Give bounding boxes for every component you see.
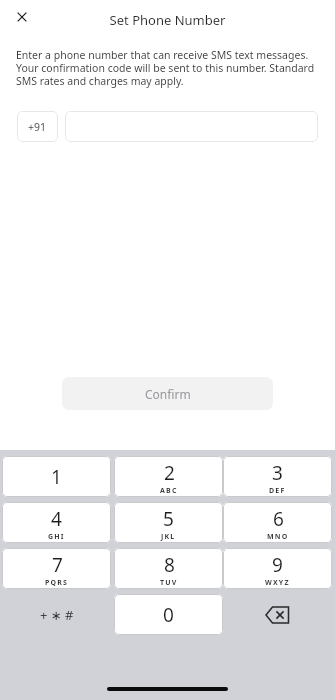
staticText: 8: [164, 552, 175, 578]
staticText: 6: [273, 506, 284, 532]
button[interactable]: 2: [114, 456, 223, 497]
staticText: ABC: [160, 486, 178, 496]
staticText: Set Phone Number: [0, 11, 335, 29]
button[interactable]: Backspace: [223, 594, 332, 635]
staticText: 1: [51, 464, 62, 490]
button[interactable]: 1: [2, 456, 111, 497]
staticText: Enter a phone number that can receive SM…: [16, 48, 316, 88]
staticText: + ∗ #: [40, 606, 74, 624]
staticText: MNO: [267, 532, 289, 542]
staticText: 4: [51, 506, 62, 532]
button[interactable]: 0: [114, 594, 223, 635]
button[interactable]: 6: [223, 502, 332, 543]
button[interactable]: Phone number: [65, 111, 318, 142]
staticText: 3: [272, 460, 283, 486]
staticText: 9: [272, 552, 283, 578]
button[interactable]: 5: [114, 502, 223, 543]
staticText: WXYZ: [265, 578, 290, 588]
button[interactable]: Confirm: [62, 377, 273, 410]
staticText: PQRS: [45, 578, 69, 588]
button[interactable]: 9: [223, 548, 332, 589]
button[interactable]: 7: [2, 548, 111, 589]
button[interactable]: + ∗ #: [2, 594, 111, 635]
button[interactable]: 3: [223, 456, 332, 497]
button[interactable]: +91: [17, 111, 58, 142]
staticText: 5: [163, 506, 174, 532]
staticText: 7: [52, 552, 63, 578]
button[interactable]: 4: [2, 502, 111, 543]
staticText: Confirm: [145, 386, 191, 402]
staticText: JKL: [161, 532, 176, 542]
staticText: GHI: [48, 532, 65, 542]
staticText: TUV: [160, 578, 178, 588]
staticText: 0: [163, 602, 174, 628]
staticText: 2: [164, 460, 175, 486]
staticText: DEF: [269, 486, 286, 496]
staticText: +91: [28, 120, 47, 134]
button[interactable]: Close: [9, 4, 34, 29]
button[interactable]: 8: [114, 548, 223, 589]
